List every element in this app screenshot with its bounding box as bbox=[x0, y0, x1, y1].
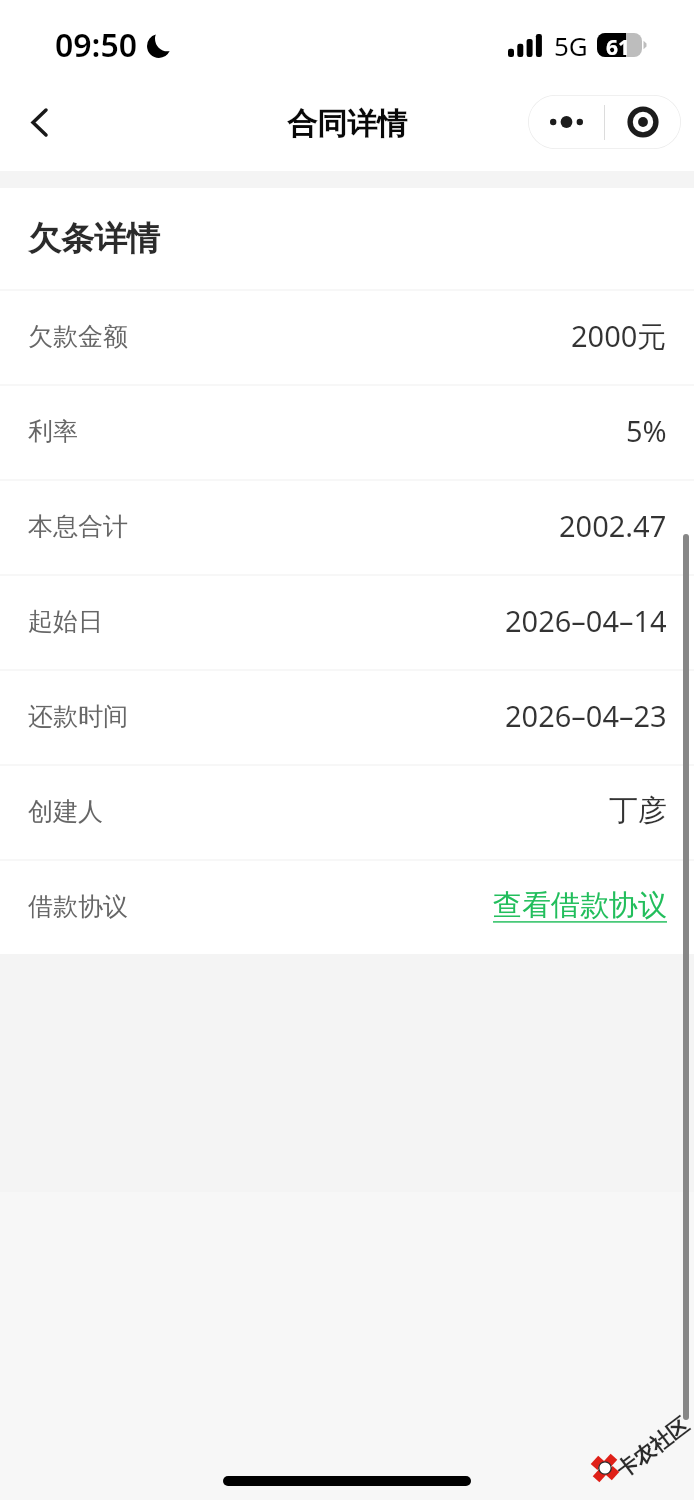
button[interactable]: 还款时间 bbox=[0, 671, 694, 764]
staticText: 2000元 bbox=[571, 316, 667, 356]
button[interactable]: More options bbox=[528, 95, 604, 149]
button[interactable]: 借款协议 bbox=[0, 861, 694, 954]
staticText: 欠款金额 bbox=[28, 321, 128, 352]
button[interactable]: Back bbox=[0, 83, 78, 161]
staticText: 查看借款协议 bbox=[493, 887, 667, 924]
button[interactable]: 创建人 bbox=[0, 766, 694, 859]
staticText: 2002.47 bbox=[559, 506, 667, 545]
button[interactable]: Close mini program bbox=[605, 95, 681, 149]
staticText: 丁彦 bbox=[609, 792, 667, 829]
button[interactable]: 欠款金额 bbox=[0, 291, 694, 384]
staticText: 借款协议 bbox=[28, 891, 128, 922]
staticText: 本息合计 bbox=[28, 511, 128, 542]
staticText: 2026–04–23 bbox=[505, 696, 667, 735]
button[interactable]: 本息合计 bbox=[0, 481, 694, 574]
button[interactable]: 利率 bbox=[0, 386, 694, 479]
staticText: 5G bbox=[554, 28, 588, 63]
staticText: 创建人 bbox=[28, 796, 103, 827]
staticText: 卡农社区 bbox=[611, 1412, 694, 1483]
button[interactable]: 起始日 bbox=[0, 576, 694, 669]
staticText: 利率 bbox=[28, 416, 78, 447]
staticText: 5% bbox=[626, 411, 667, 450]
staticText: 61 bbox=[606, 33, 631, 57]
staticText: 还款时间 bbox=[28, 701, 128, 732]
staticText: 09:50 bbox=[55, 23, 138, 67]
staticText: 合同详情 bbox=[287, 105, 407, 143]
staticText: 2026–04–14 bbox=[505, 601, 667, 640]
staticText: 起始日 bbox=[28, 606, 103, 637]
staticText: 欠条详情 bbox=[28, 218, 160, 260]
